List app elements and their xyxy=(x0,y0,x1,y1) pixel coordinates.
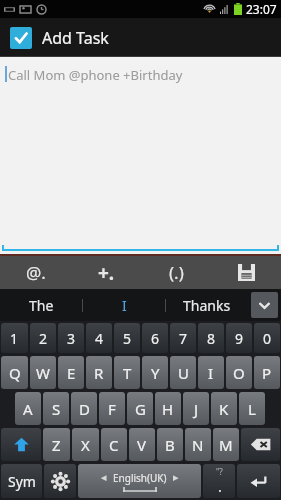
staticText: +. xyxy=(98,260,115,286)
button[interactable]: F xyxy=(99,392,125,425)
button[interactable]: 0 xyxy=(254,323,280,353)
button[interactable]: V xyxy=(129,428,155,461)
button[interactable]: Shift xyxy=(1,428,41,461)
button[interactable]: U xyxy=(170,356,196,389)
staticText: P xyxy=(262,363,272,383)
button[interactable]: 7 xyxy=(170,323,196,353)
staticText: L xyxy=(248,399,256,419)
button[interactable]: Enter xyxy=(237,464,280,498)
button[interactable]: Q xyxy=(1,356,28,389)
button[interactable]: B xyxy=(157,428,183,461)
button[interactable]: X xyxy=(72,428,99,461)
staticText: V xyxy=(137,435,147,455)
button[interactable]: More suggestions xyxy=(251,292,278,318)
staticText: H xyxy=(162,399,174,419)
button[interactable]: 2 xyxy=(30,323,56,353)
staticText: K xyxy=(219,399,229,419)
button[interactable]: Space xyxy=(78,464,201,498)
button[interactable]: N xyxy=(185,428,211,461)
staticText: M xyxy=(219,435,233,455)
staticText: 5 xyxy=(123,329,132,348)
button[interactable]: M xyxy=(213,428,239,461)
button[interactable]: K xyxy=(211,392,237,425)
button[interactable]: O xyxy=(226,356,252,389)
staticText: D xyxy=(79,399,90,419)
button[interactable]: I xyxy=(83,289,165,321)
staticText: G xyxy=(135,399,146,419)
staticText: O xyxy=(233,363,245,383)
staticText: @. xyxy=(26,261,46,284)
staticText: E xyxy=(67,363,76,383)
button[interactable]: Save xyxy=(211,256,281,289)
button[interactable]: Context tag xyxy=(0,256,71,289)
staticText: I xyxy=(208,363,214,383)
button[interactable]: Sym xyxy=(1,464,42,498)
staticText: X xyxy=(81,435,90,455)
staticText: J xyxy=(194,399,199,419)
staticText: . xyxy=(218,477,222,496)
button[interactable]: T xyxy=(114,356,140,389)
staticText: Thanks xyxy=(183,296,231,315)
staticText: 0 xyxy=(263,329,272,348)
button[interactable]: E xyxy=(58,356,84,389)
staticText: T xyxy=(123,363,132,383)
staticText: U xyxy=(178,363,189,383)
button[interactable]: 4 xyxy=(86,323,112,353)
button[interactable]: S xyxy=(43,392,69,425)
button[interactable]: W xyxy=(30,356,56,389)
staticText: 2 xyxy=(39,329,48,348)
staticText: A xyxy=(23,399,33,419)
button[interactable]: A xyxy=(15,392,41,425)
staticText: 8 xyxy=(207,329,216,348)
button[interactable]: P xyxy=(254,356,280,389)
button[interactable]: Project tag xyxy=(71,256,141,289)
button[interactable]: Parentheses xyxy=(141,256,211,289)
button[interactable]: 8 xyxy=(198,323,224,353)
button[interactable]: 1 xyxy=(1,323,28,353)
staticText: 9 xyxy=(235,329,244,348)
staticText: 4 xyxy=(95,329,104,348)
staticText: W xyxy=(36,363,50,383)
button[interactable]: Backspace xyxy=(241,428,280,461)
staticText: B xyxy=(165,435,175,455)
button[interactable]: H xyxy=(155,392,181,425)
staticText: C xyxy=(109,435,119,455)
button[interactable]: L xyxy=(239,392,265,425)
staticText: "? xyxy=(216,466,223,477)
staticText: Sym xyxy=(8,472,36,491)
staticText: ▶ xyxy=(173,474,179,482)
staticText: 6 xyxy=(151,329,160,348)
button[interactable]: Add Task xyxy=(10,27,109,49)
staticText: 3 xyxy=(67,329,76,348)
button[interactable]: J xyxy=(183,392,209,425)
staticText: R xyxy=(94,363,104,383)
button[interactable]: I xyxy=(198,356,224,389)
button[interactable]: Period xyxy=(203,464,235,498)
staticText: 7 xyxy=(179,329,188,348)
button[interactable]: 6 xyxy=(142,323,168,353)
button[interactable]: Thanks xyxy=(166,289,248,321)
button[interactable]: G xyxy=(127,392,153,425)
button[interactable]: D xyxy=(71,392,97,425)
button[interactable]: R xyxy=(86,356,112,389)
button[interactable]: Z xyxy=(43,428,70,461)
button[interactable]: The xyxy=(0,289,82,321)
staticText: N xyxy=(192,435,204,455)
button[interactable]: Settings xyxy=(44,464,76,498)
button[interactable]: C xyxy=(101,428,127,461)
staticText: Call Mom @phone +Birthday xyxy=(8,66,183,84)
button[interactable]: 9 xyxy=(226,323,252,353)
staticText: Add Task xyxy=(42,27,109,49)
staticText: Q xyxy=(9,363,21,383)
staticText: The xyxy=(29,296,54,315)
button[interactable]: 3 xyxy=(58,323,84,353)
staticText: Y xyxy=(151,363,160,383)
staticText: ◀ xyxy=(101,474,107,482)
staticText: I xyxy=(122,296,127,315)
staticText: English(UK) xyxy=(113,471,167,485)
button[interactable]: 5 xyxy=(114,323,140,353)
staticText: 23:07 xyxy=(246,1,277,17)
staticText: (.) xyxy=(169,261,184,284)
button[interactable]: Y xyxy=(142,356,168,389)
staticText: Z xyxy=(52,435,61,455)
